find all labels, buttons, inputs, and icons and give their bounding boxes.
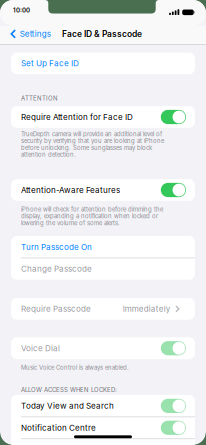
button[interactable]: Require Passcode bbox=[11, 298, 195, 320]
staticText: Turn Passcode On bbox=[21, 242, 92, 252]
staticText: Face ID & Passcode bbox=[62, 29, 142, 39]
button[interactable]: Set Up Face ID bbox=[11, 52, 195, 74]
staticText: ATTENTION bbox=[21, 95, 58, 102]
button[interactable]: Notification Centre bbox=[11, 417, 195, 439]
staticText: Immediately bbox=[123, 304, 171, 314]
staticText: Voice Dial bbox=[21, 343, 60, 353]
staticText: security by verifying that you are looki… bbox=[21, 137, 164, 144]
staticText: ALLOW ACCESS WHEN LOCKED: bbox=[21, 386, 117, 393]
staticText: display, expanding a notification when l… bbox=[21, 213, 158, 220]
staticText: Music Voice Control is always enabled. bbox=[21, 364, 129, 371]
staticText: 10:00 bbox=[13, 7, 30, 14]
button[interactable]: Attention-Aware Features bbox=[11, 179, 195, 201]
staticText: Attention-Aware Features bbox=[21, 185, 120, 195]
staticText: before unlocking. Some sunglasses may bl… bbox=[21, 144, 152, 151]
staticText: Set Up Face ID bbox=[21, 58, 79, 68]
staticText: TrueDepth camera will provide an additio… bbox=[21, 130, 162, 138]
staticText: lowering the volume of some alerts. bbox=[21, 219, 120, 227]
button[interactable]: Turn Passcode On bbox=[11, 236, 195, 258]
button[interactable]: Today View and Search bbox=[11, 395, 195, 417]
staticText: attention detection. bbox=[21, 151, 76, 158]
button[interactable]: Require Attention for Face ID bbox=[11, 106, 195, 128]
staticText: Require Attention for Face ID bbox=[21, 112, 133, 122]
staticText: Change Passcode bbox=[21, 264, 92, 274]
button[interactable]: Settings bbox=[10, 29, 51, 39]
button[interactable]: Change Passcode bbox=[11, 258, 195, 280]
staticText: Settings bbox=[20, 29, 51, 39]
button[interactable]: Voice Dial bbox=[11, 337, 195, 359]
staticText: Require Passcode bbox=[21, 304, 91, 314]
staticText: Today View and Search bbox=[21, 401, 114, 411]
staticText: iPhone will check for attention before d… bbox=[21, 206, 163, 213]
staticText: Notification Centre bbox=[21, 423, 96, 433]
